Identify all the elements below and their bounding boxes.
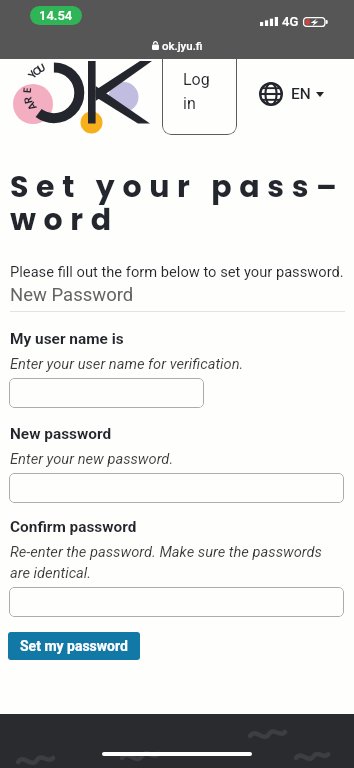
staticText: Enter your new password. [10, 450, 174, 467]
staticText: Re-enter the password. Make sure the pas… [10, 543, 345, 581]
staticText: Log in [183, 70, 210, 113]
other: Are you OK logo [0, 0, 354, 150]
button[interactable] [9, 473, 344, 503]
staticText: U [34, 59, 48, 75]
staticText: New Password [10, 284, 134, 306]
staticText: E [19, 86, 33, 94]
staticText: 14.54 [39, 8, 73, 23]
button[interactable] [9, 378, 204, 408]
staticText: Enter your user name for verification. [10, 355, 244, 372]
staticText: Set my password [20, 638, 128, 654]
staticText: R [19, 94, 35, 105]
staticText: A [23, 100, 39, 114]
staticText: O [29, 62, 44, 78]
other: Language [259, 82, 283, 106]
staticText: Please fill out the form below to set yo… [10, 263, 344, 280]
staticText: EN [291, 85, 311, 103]
staticText: 4G [282, 14, 299, 29]
button[interactable]: Set my password [8, 632, 140, 660]
staticText: ok.jyu.fi [162, 39, 203, 52]
staticText: My user name is [10, 330, 124, 348]
button[interactable]: Language [259, 82, 324, 106]
staticText: Confirm password [10, 518, 137, 536]
staticText: Set your pass–word [10, 166, 345, 241]
staticText: Y [24, 67, 39, 81]
staticText: New password [10, 425, 112, 443]
other: Signal strength [260, 17, 278, 26]
button[interactable] [9, 587, 344, 617]
button[interactable]: Log in [162, 50, 237, 135]
other: Battery charging [303, 17, 328, 27]
